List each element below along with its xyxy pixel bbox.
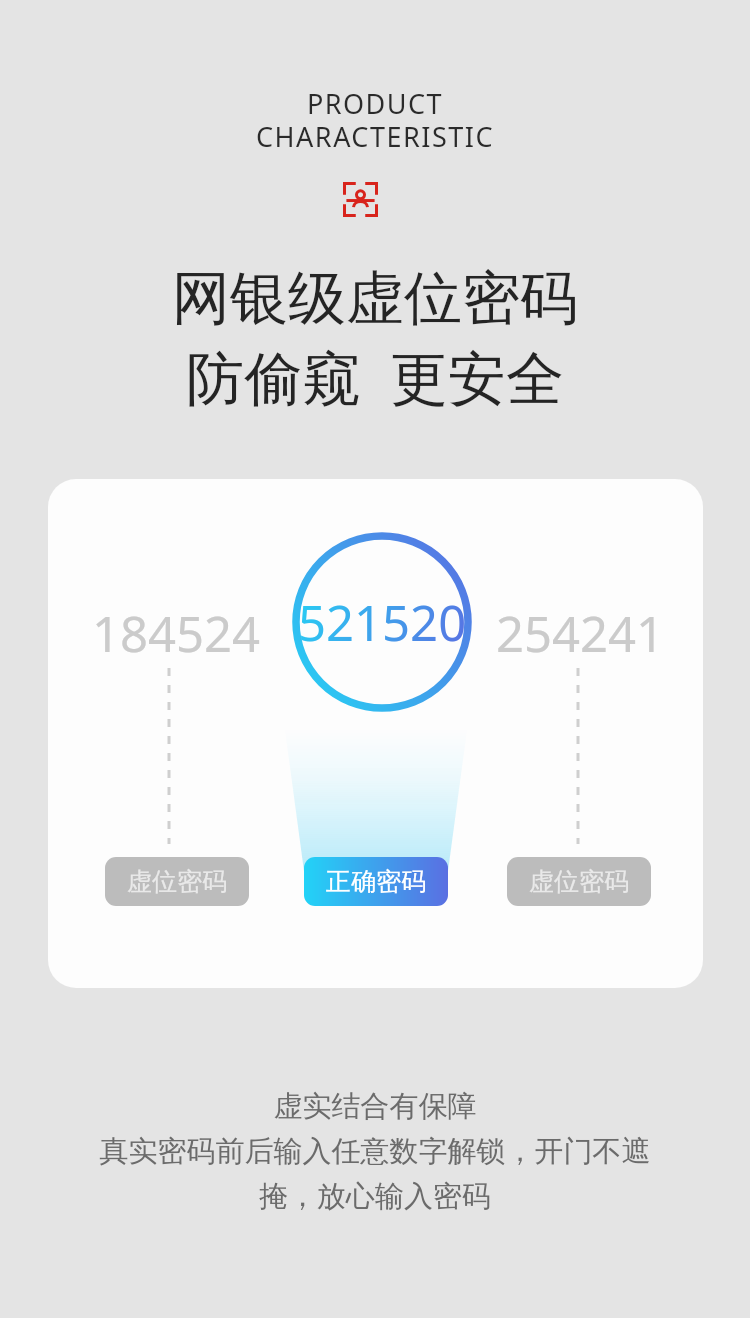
other: Face scan: [343, 182, 378, 217]
staticText: 虚实结合有保障 真实密码前后输入任意数字解锁，开门不遮 掩，放心输入密码: [55, 1088, 695, 1214]
staticText: PRODUCT CHARACTERISTIC: [75, 85, 675, 155]
staticText: 184524: [56, 600, 296, 667]
button[interactable]: 正确密码: [304, 857, 448, 906]
button[interactable]: 虚位密码: [105, 857, 249, 906]
staticText: 虚位密码: [529, 866, 629, 897]
button[interactable]: 虚位密码: [507, 857, 651, 906]
staticText: 网银级虚位密码 防偷窥 更安全: [35, 262, 715, 416]
staticText: 正确密码: [326, 866, 426, 897]
staticText: 254241: [460, 600, 700, 667]
staticText: 虚位密码: [127, 866, 227, 897]
staticText: 521520: [298, 589, 467, 656]
